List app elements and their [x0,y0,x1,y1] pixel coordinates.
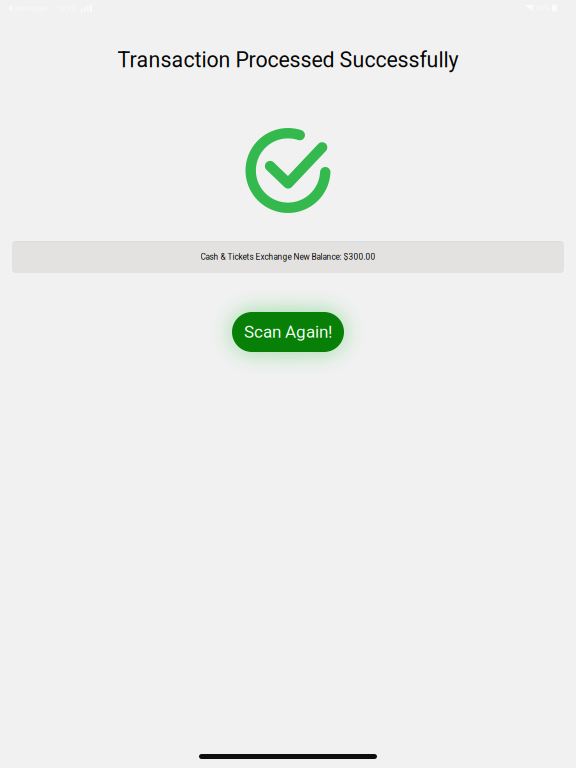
staticText: Scan Again! [244,322,332,342]
staticText: Cash & Tickets Exchange New Balance: $30… [200,252,375,262]
staticText: Transaction Processed Successfully [117,47,458,72]
button[interactable]: Scan Again! [232,312,344,352]
